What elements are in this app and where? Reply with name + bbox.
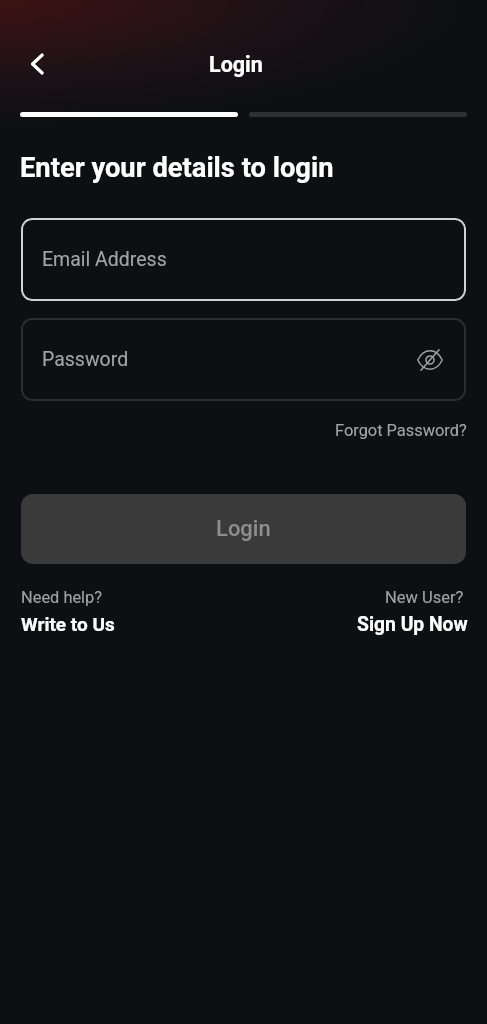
staticText: Login — [216, 516, 271, 542]
button[interactable]: Back — [15, 42, 59, 86]
button[interactable]: Need help? — [21, 588, 115, 635]
button[interactable]: Login — [21, 494, 466, 564]
staticText: Email Address — [42, 248, 167, 271]
button[interactable]: New User? — [357, 588, 468, 636]
staticText: Password — [42, 348, 129, 371]
staticText: Login — [209, 52, 263, 77]
button[interactable]: Show password — [410, 340, 450, 380]
button[interactable]: Email Address — [21, 218, 466, 301]
staticText: New User? — [385, 588, 464, 607]
staticText: Write to Us — [21, 613, 115, 635]
staticText: Enter your details to login — [20, 152, 334, 184]
button[interactable]: Forgot Password? — [335, 416, 487, 445]
staticText: Sign Up Now — [357, 613, 468, 636]
button[interactable]: Password — [21, 318, 466, 401]
staticText: Need help? — [21, 588, 103, 607]
